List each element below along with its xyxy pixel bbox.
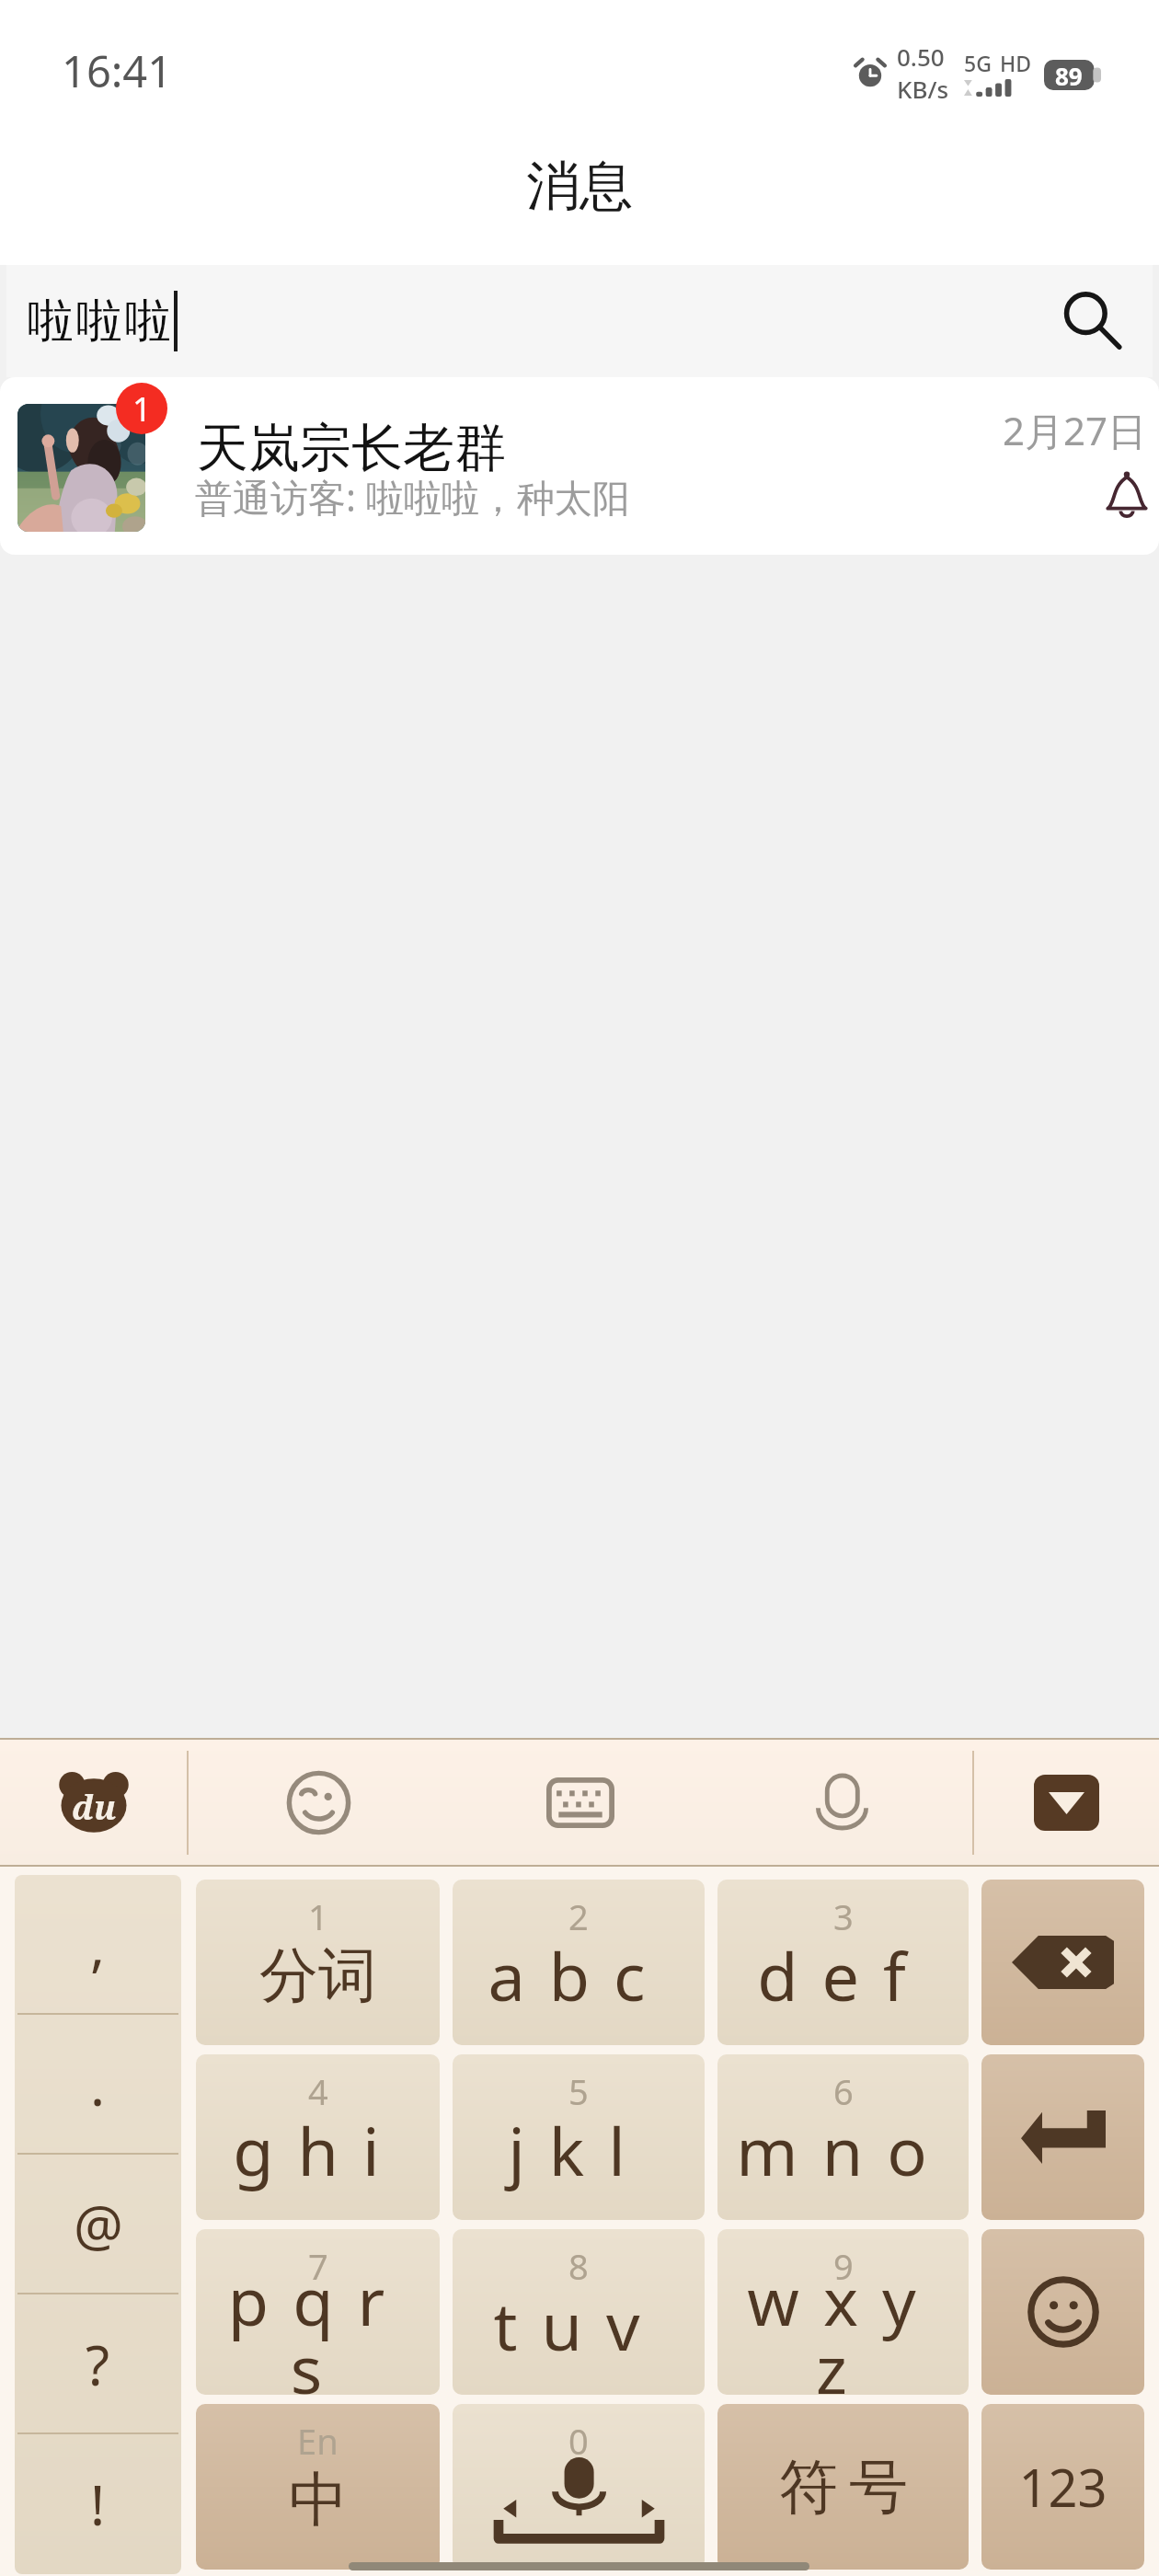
button[interactable]: Keyboard layout	[450, 1738, 710, 1867]
button[interactable]: Hide keyboard	[974, 1738, 1159, 1867]
staticText: 16:41	[62, 41, 173, 100]
button[interactable]: Search	[1037, 266, 1147, 376]
staticText: wxyz	[738, 2255, 949, 2395]
staticText: HD	[1000, 49, 1032, 77]
staticText: def	[757, 1930, 930, 2020]
button[interactable]: ,	[15, 1875, 181, 2015]
staticText: 消息	[526, 153, 633, 220]
button[interactable]: Baidu input	[0, 1738, 187, 1867]
button[interactable]: Voice input	[453, 2404, 705, 2570]
button[interactable]: ?	[15, 2294, 181, 2434]
button[interactable]: 4	[196, 2054, 440, 2220]
staticText: tuv	[493, 2280, 664, 2370]
button[interactable]: Emoji	[981, 2229, 1144, 2395]
staticText: .	[90, 2047, 106, 2122]
staticText: 1	[132, 386, 152, 431]
staticText: 啦啦啦	[26, 293, 172, 351]
staticText: 0.50	[897, 40, 945, 73]
button[interactable]: 9	[717, 2229, 969, 2395]
staticText: 7	[308, 2242, 328, 2290]
button[interactable]: !	[15, 2434, 181, 2574]
staticText: 0	[568, 2417, 589, 2465]
button[interactable]: Enter	[981, 2054, 1144, 2220]
button[interactable]: 8	[453, 2229, 705, 2395]
button[interactable]: 5	[453, 2054, 705, 2220]
staticText: 9	[833, 2242, 854, 2290]
button[interactable]: 符号	[717, 2404, 969, 2570]
staticText: 123	[1018, 2452, 1107, 2522]
button[interactable]: 3	[717, 1880, 969, 2045]
staticText: 中	[289, 2463, 348, 2537]
button[interactable]: @	[15, 2155, 181, 2294]
staticText: du	[72, 1785, 117, 1830]
button[interactable]: Backspace	[981, 1880, 1144, 2045]
staticText: 普通访客: 啦啦啦，种太阳	[195, 471, 630, 523]
staticText: 3	[833, 1892, 854, 1940]
staticText: !	[90, 2467, 106, 2542]
staticText: 8	[568, 2242, 589, 2290]
staticText: ?	[86, 2327, 110, 2402]
staticText: 1	[308, 1892, 328, 1940]
staticText: 89	[1055, 60, 1083, 90]
staticText: 2月27日	[1003, 404, 1147, 456]
button[interactable]: Mute notifications	[1096, 464, 1157, 524]
button[interactable]: En	[196, 2404, 440, 2570]
staticText: 6	[833, 2067, 854, 2115]
staticText: abc	[488, 1930, 670, 2020]
button[interactable]: 7	[196, 2229, 440, 2395]
staticText: ,	[90, 1907, 106, 1983]
staticText: 2	[568, 1892, 589, 1940]
staticText: 5G	[964, 49, 992, 77]
button[interactable]: Voice input	[712, 1738, 972, 1867]
button[interactable]: 天岚宗长老群	[0, 377, 1159, 555]
staticText: 5	[568, 2067, 589, 2115]
staticText: 天岚宗长老群	[197, 416, 506, 481]
staticText: ghi	[233, 2105, 404, 2195]
staticText: KB/s	[897, 73, 949, 105]
button[interactable]: 1	[196, 1880, 440, 2045]
button[interactable]: 啦啦啦	[6, 265, 1153, 377]
staticText: mno	[736, 2105, 951, 2195]
staticText: pqrs	[212, 2255, 424, 2395]
staticText: jkl	[508, 2105, 649, 2195]
button[interactable]: 2	[453, 1880, 705, 2045]
button[interactable]: Emoji	[189, 1738, 448, 1867]
staticText: En	[297, 2417, 339, 2465]
button[interactable]: .	[15, 2015, 181, 2155]
staticText: @	[74, 2187, 123, 2262]
button[interactable]: 123	[981, 2404, 1144, 2570]
staticText: 符号	[774, 2450, 913, 2524]
staticText: 分词	[259, 1938, 377, 2013]
button[interactable]: 6	[717, 2054, 969, 2220]
staticText: 4	[308, 2067, 328, 2115]
